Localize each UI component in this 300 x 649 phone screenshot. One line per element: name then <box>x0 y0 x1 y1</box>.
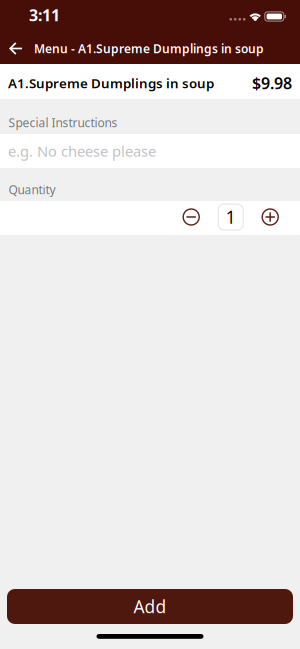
button[interactable]: Add <box>7 589 293 624</box>
staticText: Quantity <box>8 182 55 197</box>
staticText: 3:11 <box>29 4 60 26</box>
staticText: $9.98 <box>252 72 292 94</box>
staticText: 1 <box>226 205 236 228</box>
staticText: Menu - A1.Supreme Dumplings in soup <box>34 40 264 56</box>
button[interactable]: Back <box>9 41 23 55</box>
button[interactable]: Increase quantity <box>262 208 279 225</box>
staticText: e.g. No cheese please <box>8 141 156 161</box>
staticText: A1.Supreme Dumplings in soup <box>8 74 214 92</box>
staticText: Add <box>133 595 166 618</box>
button[interactable]: Quantity <box>218 204 243 230</box>
button[interactable]: Decrease quantity <box>183 208 200 225</box>
staticText: Special Instructions <box>8 115 117 130</box>
button[interactable]: Special Instructions <box>0 134 300 168</box>
